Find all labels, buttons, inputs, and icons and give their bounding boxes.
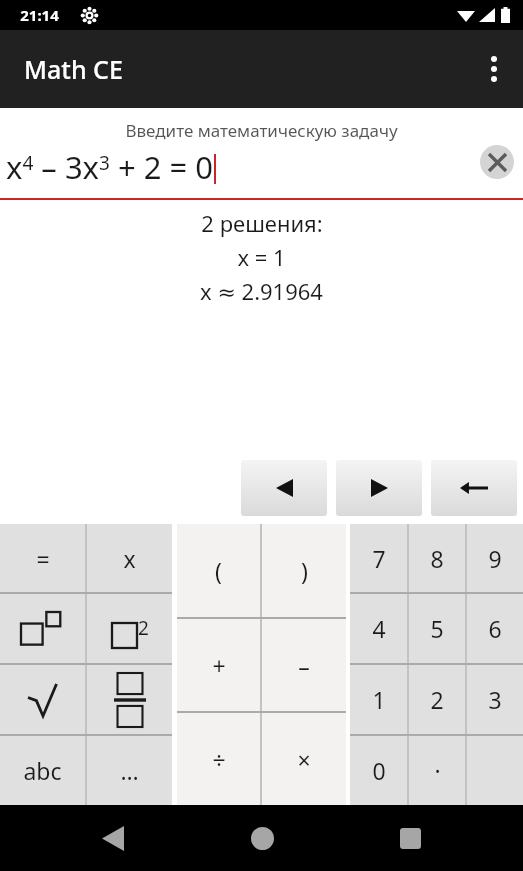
button[interactable]: abc bbox=[0, 736, 85, 805]
button[interactable]: Fraction bbox=[87, 665, 172, 734]
staticText: 21:14 bbox=[20, 5, 59, 25]
staticText: ÷ bbox=[212, 744, 226, 775]
staticText: 2 bbox=[430, 684, 444, 715]
staticText: 1 bbox=[372, 684, 386, 715]
staticText: 8 bbox=[430, 543, 444, 574]
staticText: 7 bbox=[372, 543, 386, 574]
staticText: x ≈ 2.91964 bbox=[200, 276, 323, 306]
staticText: Введите математическую задачу bbox=[125, 119, 398, 142]
button[interactable]: 3 bbox=[467, 665, 523, 734]
button[interactable]: Power bbox=[0, 594, 85, 663]
button[interactable]: … bbox=[87, 736, 172, 805]
button[interactable]: ) bbox=[262, 524, 346, 617]
button[interactable]: Square bbox=[87, 594, 172, 663]
button[interactable]: × bbox=[262, 713, 346, 805]
button[interactable]: x bbox=[87, 524, 172, 592]
staticText: × bbox=[297, 744, 311, 775]
staticText: ( bbox=[215, 555, 222, 586]
staticText: 2 решения: bbox=[201, 208, 323, 238]
staticText: Math CE bbox=[24, 52, 123, 86]
button[interactable]: 2 bbox=[409, 665, 465, 734]
staticText: … bbox=[120, 755, 139, 786]
button[interactable]: 5 bbox=[409, 594, 465, 663]
button[interactable]: 8 bbox=[409, 524, 465, 592]
staticText: + bbox=[212, 650, 226, 681]
button[interactable]: 4 bbox=[350, 594, 407, 663]
button[interactable]: Move cursor right bbox=[336, 460, 422, 516]
button[interactable]: Back bbox=[90, 815, 136, 861]
staticText: 4 bbox=[372, 613, 386, 644]
staticText: 3 bbox=[488, 684, 502, 715]
button[interactable]: – bbox=[262, 619, 346, 711]
staticText: abc bbox=[23, 755, 62, 786]
button[interactable]: Square root bbox=[0, 665, 85, 734]
staticText: = bbox=[36, 543, 50, 574]
staticText: · bbox=[434, 755, 441, 786]
button[interactable]: 9 bbox=[467, 524, 523, 592]
staticText: x bbox=[123, 543, 136, 574]
button[interactable]: Clear bbox=[477, 142, 517, 182]
button[interactable]: Home bbox=[239, 815, 285, 861]
button[interactable]: 6 bbox=[467, 594, 523, 663]
button[interactable]: 7 bbox=[350, 524, 407, 592]
staticText: ) bbox=[301, 555, 308, 586]
staticText: 5 bbox=[430, 613, 444, 644]
button[interactable]: More options bbox=[465, 30, 523, 108]
button[interactable]: · bbox=[409, 736, 465, 805]
button[interactable]: 0 bbox=[350, 736, 407, 805]
button[interactable]: Recent apps bbox=[387, 815, 433, 861]
staticText: x4 – 3x3 + 2 = 0 bbox=[6, 146, 214, 188]
button[interactable]: ( bbox=[177, 524, 260, 617]
staticText: x = 1 bbox=[237, 242, 286, 272]
button[interactable]: Backspace bbox=[431, 460, 517, 516]
button[interactable]: Move cursor left bbox=[241, 460, 327, 516]
button[interactable]: + bbox=[177, 619, 260, 711]
staticText: 9 bbox=[488, 543, 502, 574]
staticText: 6 bbox=[488, 613, 502, 644]
staticText: – bbox=[298, 650, 310, 681]
staticText: 0 bbox=[372, 755, 386, 786]
staticText: 2 bbox=[138, 615, 149, 641]
button[interactable]: 1 bbox=[350, 665, 407, 734]
button[interactable]: ÷ bbox=[177, 713, 260, 805]
button[interactable]: = bbox=[0, 524, 85, 592]
